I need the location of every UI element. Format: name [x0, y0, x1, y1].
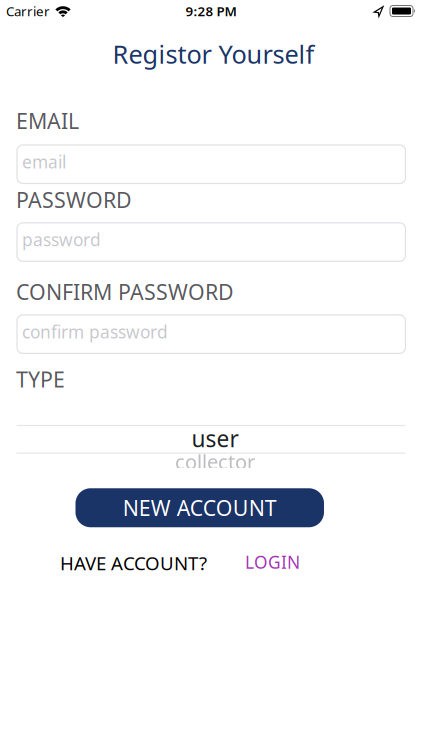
- staticText: EMAIL: [16, 107, 79, 135]
- staticText: TYPE: [16, 365, 65, 393]
- staticText: password: [22, 228, 101, 251]
- staticText: email: [22, 150, 66, 173]
- button[interactable]: NEW ACCOUNT: [75, 488, 324, 527]
- staticText: CONFIRM PASSWORD: [16, 278, 234, 306]
- button[interactable]: LOGIN: [245, 551, 300, 574]
- staticText: LOGIN: [245, 551, 300, 574]
- staticText: PASSWORD: [16, 185, 132, 214]
- staticText: collector: [175, 448, 255, 475]
- staticText: NEW ACCOUNT: [123, 494, 277, 522]
- staticText: HAVE ACCOUNT?: [60, 551, 207, 575]
- staticText: 9:28 PM: [185, 2, 236, 20]
- staticText: confirm password: [22, 320, 168, 343]
- staticText: Registor Yourself: [112, 37, 314, 71]
- staticText: user: [191, 423, 238, 454]
- staticText: Carrier: [6, 2, 50, 20]
